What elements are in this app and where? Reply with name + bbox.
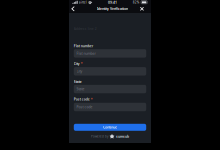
staticText: * [91, 97, 93, 102]
staticText: Post code [74, 97, 90, 102]
staticText: Address line 2 [74, 26, 97, 31]
button[interactable]: Close [138, 5, 146, 12]
staticText: State [74, 79, 82, 84]
staticText: 82% [133, 0, 140, 4]
staticText: Flat number [77, 51, 96, 56]
staticText: State [77, 87, 85, 91]
staticText: sumsub [116, 134, 129, 139]
staticText: airtel [79, 0, 87, 4]
staticText: Identity Verification [97, 6, 128, 11]
staticText: City [77, 69, 83, 73]
staticText: City [74, 61, 80, 66]
staticText: 09:41 [108, 0, 117, 5]
staticText: Powered by [91, 135, 108, 138]
staticText: * [81, 61, 83, 66]
button[interactable]: Continue [74, 124, 146, 131]
staticText: Flat number [74, 44, 93, 48]
staticText: Continue [103, 125, 117, 129]
button[interactable]: Back [69, 5, 77, 12]
staticText: Post code [77, 105, 93, 109]
